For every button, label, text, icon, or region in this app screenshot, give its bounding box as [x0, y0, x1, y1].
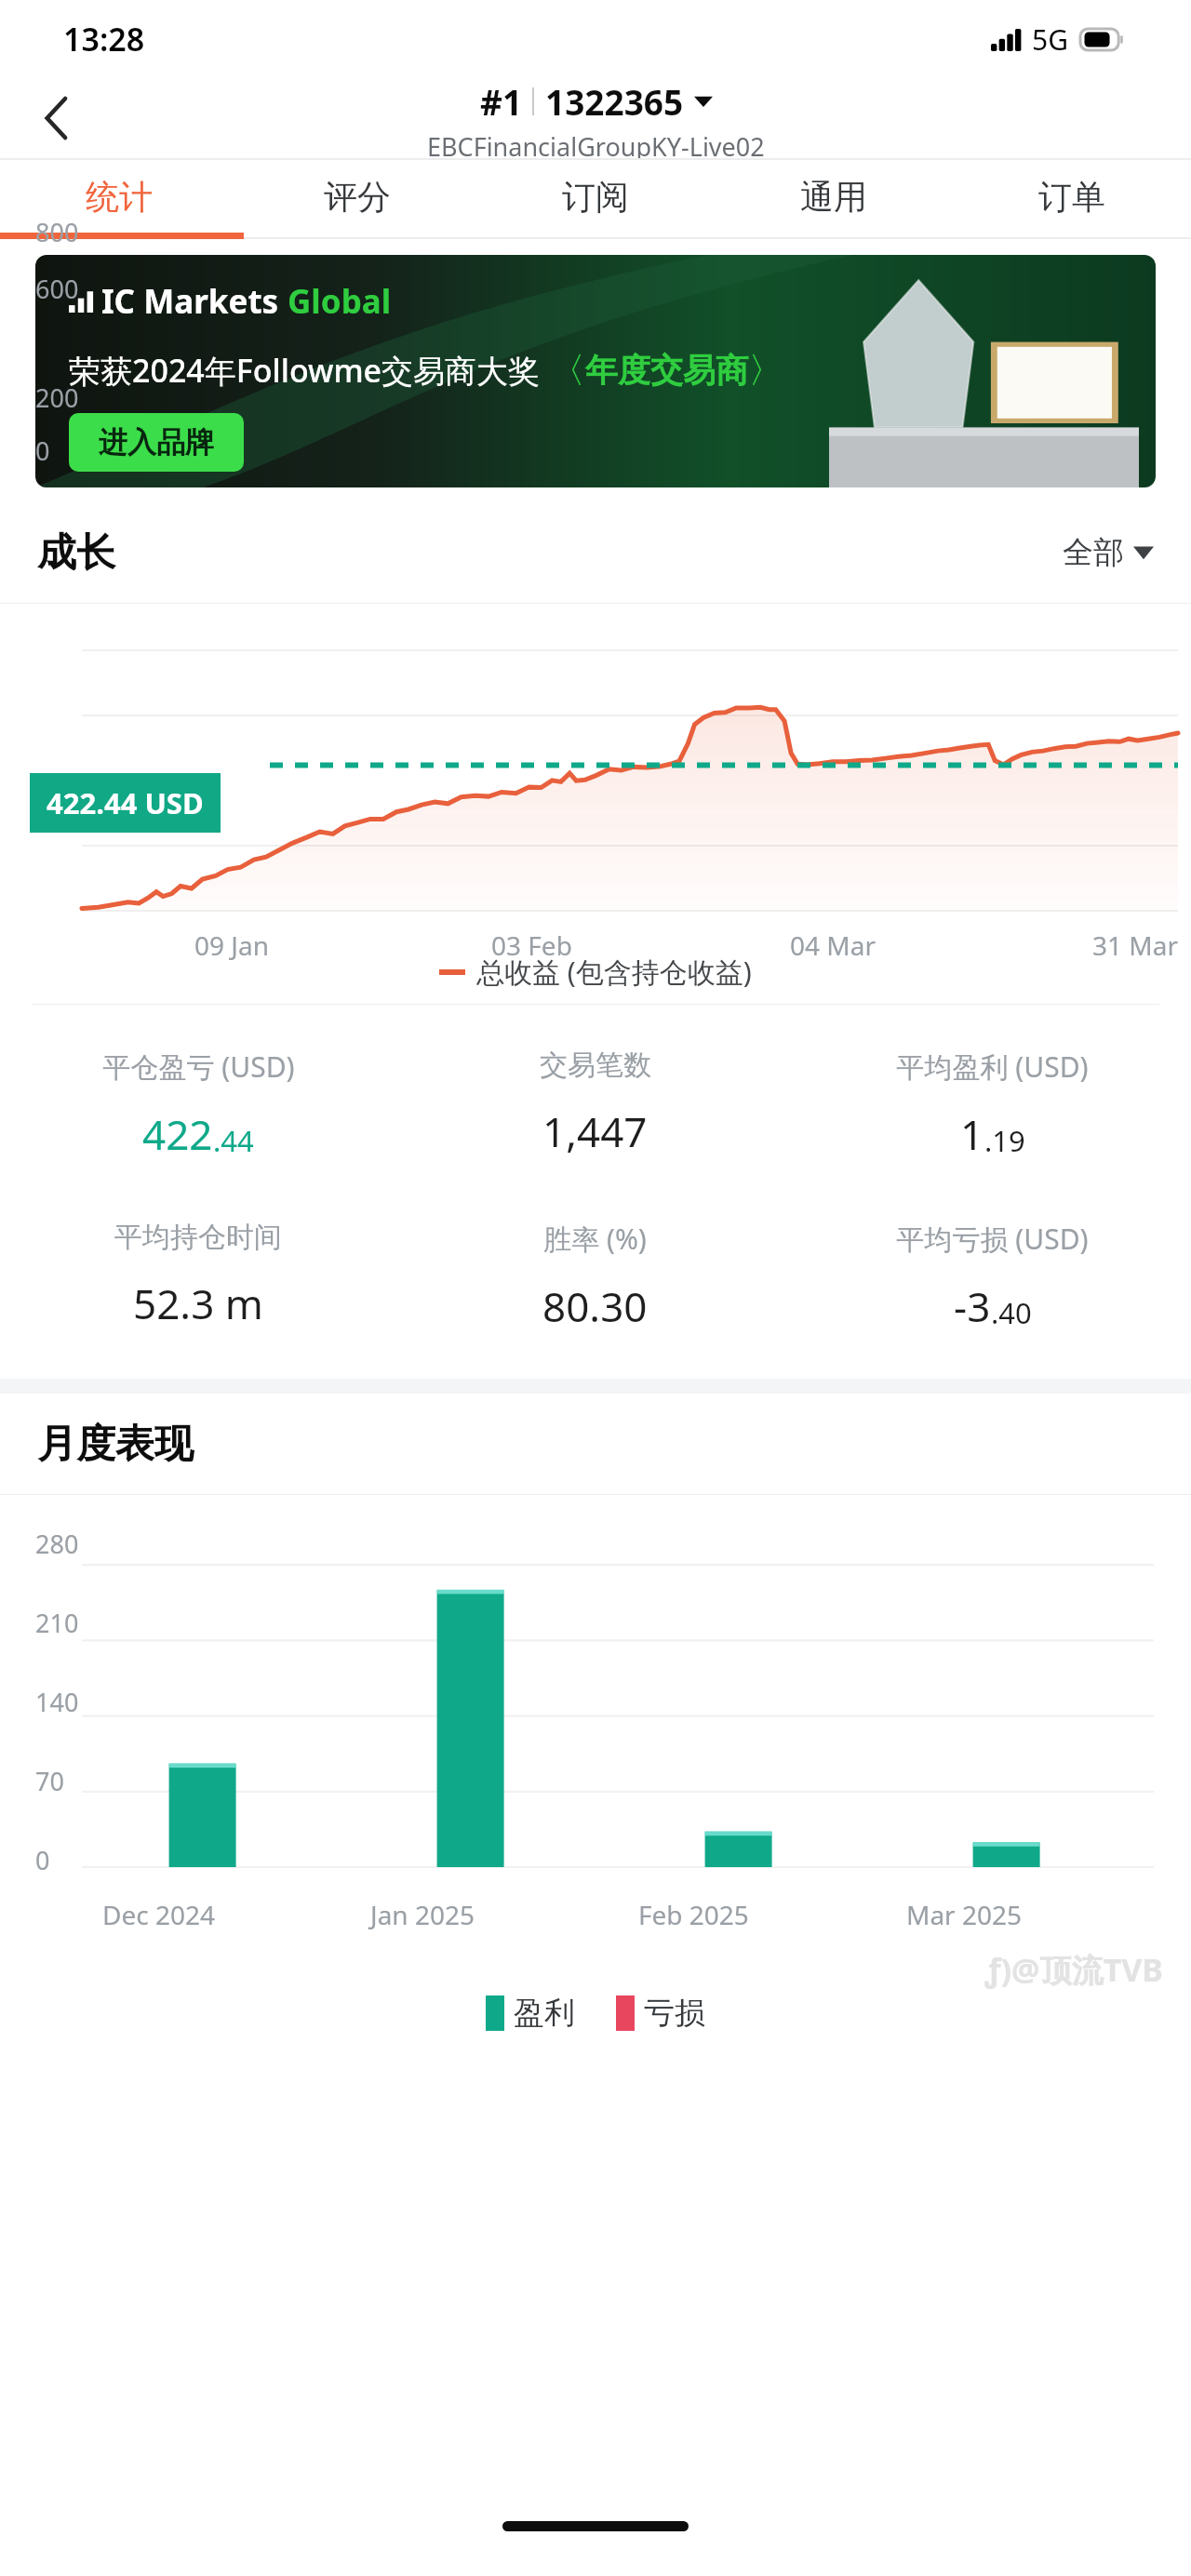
- staticText: 52.3 m: [133, 1275, 263, 1331]
- staticText: 订阅: [562, 176, 629, 218]
- button[interactable]: 评分: [238, 160, 476, 233]
- staticText: 210: [35, 1606, 79, 1640]
- staticText: .40: [991, 1293, 1032, 1332]
- staticText: 进入品牌: [99, 424, 214, 460]
- staticText: 70: [35, 1764, 64, 1798]
- staticText: 总收益 (包含持仓收益): [476, 953, 752, 991]
- button[interactable]: 全部: [1063, 533, 1154, 572]
- staticText: EBCFinancialGroupKY-Live02: [427, 129, 765, 158]
- staticText: 1,447: [542, 1103, 648, 1159]
- button[interactable]: Back: [24, 86, 89, 151]
- staticText: #1: [480, 78, 523, 125]
- staticText: 1: [960, 1106, 984, 1162]
- button[interactable]: #1: [480, 78, 713, 125]
- button[interactable]: 订单: [953, 160, 1191, 233]
- staticText: 交易笔数: [540, 1048, 651, 1083]
- button[interactable]: 通用: [715, 160, 953, 233]
- button[interactable]: 进入品牌: [69, 413, 244, 472]
- staticText: 09 Jan: [194, 928, 269, 963]
- staticText: 31 Mar: [1092, 928, 1178, 963]
- staticText: 800: [35, 215, 79, 249]
- staticText: 0: [35, 434, 50, 468]
- button[interactable]: 订阅: [476, 160, 715, 233]
- staticText: 0: [35, 1843, 50, 1877]
- staticText: IC Markets: [101, 279, 288, 324]
- staticText: 200: [35, 380, 79, 415]
- staticText: 胜率 (%): [543, 1220, 647, 1258]
- staticText: 荣获2024年Followme交易商大奖: [69, 349, 541, 392]
- staticText: .19: [984, 1121, 1025, 1160]
- staticText: 全部: [1063, 533, 1124, 572]
- staticText: ƒ)@顶流TVB: [984, 1948, 1163, 1991]
- staticText: 5G: [1032, 20, 1068, 59]
- staticText: 280: [35, 1527, 79, 1561]
- staticText: 月度表现: [37, 1420, 194, 1469]
- staticText: 422.44 USD: [47, 783, 204, 822]
- staticText: Global: [288, 279, 392, 324]
- staticText: 盈利: [514, 1994, 575, 2033]
- staticText: 80.30: [542, 1278, 648, 1334]
- staticText: 评分: [324, 176, 391, 218]
- staticText: 平仓盈亏 (USD): [102, 1048, 295, 1086]
- staticText: 1322365: [545, 78, 684, 125]
- staticText: 600: [35, 272, 79, 306]
- staticText: 年度交易商: [585, 350, 748, 391]
- staticText: 〉: [748, 348, 783, 393]
- staticText: 〈: [550, 348, 585, 393]
- staticText: 平均盈利 (USD): [896, 1048, 1089, 1086]
- staticText: 03 Feb: [491, 928, 572, 963]
- staticText: 平均持仓时间: [114, 1220, 282, 1255]
- staticText: 统计: [86, 176, 153, 218]
- staticText: 亏损: [644, 1994, 705, 2033]
- staticText: Jan 2025: [370, 1897, 475, 1932]
- staticText: .44: [213, 1121, 254, 1160]
- staticText: 140: [35, 1685, 79, 1719]
- staticText: 04 Mar: [790, 928, 876, 963]
- button[interactable]: 统计: [0, 160, 238, 233]
- staticText: Dec 2024: [102, 1897, 216, 1932]
- staticText: Mar 2025: [906, 1897, 1023, 1932]
- staticText: 13:28: [63, 18, 145, 60]
- staticText: 通用: [800, 176, 867, 218]
- staticText: -3: [954, 1278, 991, 1334]
- staticText: 422: [142, 1106, 213, 1162]
- staticText: Feb 2025: [638, 1897, 749, 1932]
- staticText: 订单: [1038, 176, 1105, 218]
- button[interactable]: IC Markets: [35, 255, 1156, 487]
- staticText: 成长: [37, 528, 115, 578]
- staticText: 平均亏损 (USD): [896, 1220, 1089, 1258]
